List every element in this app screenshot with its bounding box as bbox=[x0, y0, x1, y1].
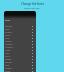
button[interactable]: Lato bbox=[4, 64, 36, 67]
button[interactable]: Rubik bbox=[4, 34, 36, 37]
staticText: Lato bbox=[5, 64, 32, 67]
staticText: Roboto bbox=[5, 25, 32, 28]
staticText: Karla bbox=[5, 55, 32, 58]
staticText: Make it your own bbox=[24, 7, 40, 10]
button[interactable]: Roboto bbox=[4, 25, 36, 28]
staticText: Roboto bbox=[5, 61, 32, 64]
button[interactable]: Oswald bbox=[4, 31, 36, 34]
button[interactable]: Lato bbox=[4, 28, 36, 31]
staticText: Change the fonts bbox=[21, 2, 44, 6]
staticText: Lato bbox=[5, 28, 32, 31]
button[interactable]: Oswald bbox=[4, 67, 36, 70]
button[interactable]: Roboto bbox=[4, 61, 36, 64]
button[interactable]: Cabin bbox=[4, 49, 36, 52]
staticText: Oswald bbox=[5, 67, 32, 70]
staticText: Poppins bbox=[5, 46, 32, 49]
staticText: Rubik bbox=[5, 34, 32, 37]
staticText: Mulish bbox=[5, 58, 32, 61]
button[interactable]: Inter bbox=[4, 37, 36, 40]
button[interactable]: Ubuntu bbox=[4, 43, 36, 46]
button[interactable]: Arvo bbox=[4, 52, 36, 55]
staticText: Arvo bbox=[5, 52, 32, 55]
staticText: Oswald bbox=[5, 31, 32, 34]
staticText: Inter bbox=[5, 37, 32, 40]
button[interactable]: Rubik bbox=[4, 70, 36, 72]
staticText: Ubuntu bbox=[5, 43, 32, 46]
button[interactable]: Karla bbox=[4, 55, 36, 58]
button[interactable]: Mulish bbox=[4, 58, 36, 61]
button[interactable]: Nunito bbox=[4, 40, 36, 43]
staticText: Nunito bbox=[5, 40, 32, 43]
staticText: Cabin bbox=[5, 49, 32, 52]
staticText: Fonts bbox=[5, 19, 10, 22]
staticText: Rubik bbox=[5, 70, 32, 72]
button[interactable]: Poppins bbox=[4, 46, 36, 49]
